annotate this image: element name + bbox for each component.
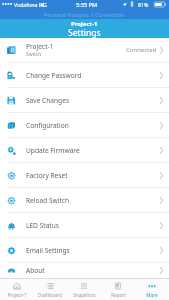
staticText: Dashboard [38,292,62,298]
staticText: Factory Reset [26,171,68,180]
button[interactable]: Factory Reset [0,163,169,188]
staticText: 81% [138,1,149,8]
button[interactable]: Dashboard [33,279,67,300]
staticText: Update Firmware [26,146,80,155]
button[interactable]: About [0,263,169,278]
button[interactable]: Email Settings [0,238,169,263]
button[interactable]: Configuration [0,113,169,138]
staticText: 5:35 PM [76,1,98,9]
button[interactable]: Project-1 [0,279,33,300]
staticText: Project-1 [26,42,54,51]
staticText: Switch [26,51,42,58]
staticText: Configuration [26,121,69,130]
staticText: Vodafone IN [14,1,45,8]
staticText: LED Status [26,221,59,230]
button[interactable]: Reload Switch [0,188,169,213]
button[interactable]: Snapshots [67,279,101,300]
button[interactable]: Change Password [0,63,169,88]
staticText: Email Settings [26,246,70,255]
staticText: Connected [126,46,157,54]
staticText: Settings [68,27,101,39]
button[interactable]: Update Firmware [0,138,169,163]
staticText: About [26,266,45,275]
button[interactable]: More [135,279,169,300]
staticText: Reload Switch [26,196,70,205]
button[interactable]: Save Changes [0,88,169,113]
staticText: More [146,292,158,298]
staticText: Project-1 [7,292,27,298]
staticText: Snapshots [73,292,96,298]
staticText: Change Password [26,71,82,80]
staticText: Save Changes [26,96,70,105]
staticText: Report [111,292,126,298]
button[interactable]: LED Status [0,213,169,238]
staticText: Personal Hotspot: 1 Connection [44,11,125,18]
button[interactable]: Report [101,279,135,300]
staticText: 4G [40,1,47,8]
staticText: Project-1 [71,20,98,28]
button[interactable]: Project-1 [0,38,169,63]
